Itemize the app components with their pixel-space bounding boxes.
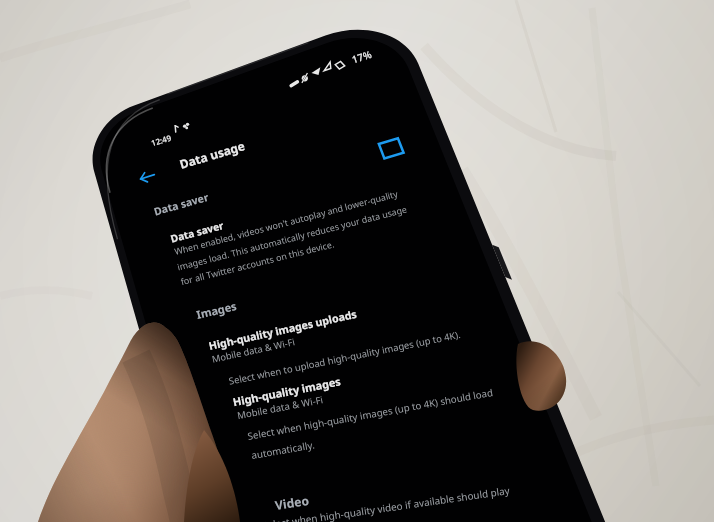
button[interactable]	[222, 388, 472, 444]
button[interactable]	[196, 330, 446, 386]
button[interactable]	[162, 228, 412, 290]
button[interactable]: Data saver switch	[368, 132, 402, 166]
button[interactable]: Back	[126, 164, 162, 196]
button[interactable]	[150, 196, 380, 242]
